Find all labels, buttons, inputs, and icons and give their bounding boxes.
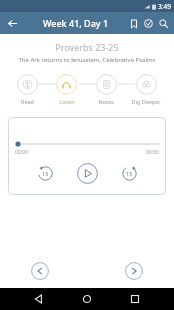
staticText: Dig Deeper	[131, 98, 161, 105]
staticText: 15	[126, 170, 133, 177]
button[interactable]: Seek bar	[15, 141, 159, 147]
staticText: 15	[42, 170, 49, 177]
button[interactable]: Play	[76, 162, 98, 184]
button[interactable]: Mark complete	[141, 16, 156, 31]
button[interactable]: Home	[78, 290, 96, 308]
button[interactable]: Listen	[56, 74, 77, 95]
staticText: Week 41, Day 1	[43, 17, 109, 29]
staticText: Proverbs 23-25	[0, 41, 174, 53]
button[interactable]: Forward 15 seconds	[120, 164, 138, 182]
button[interactable]: Dig Deeper	[136, 74, 157, 95]
button[interactable]: Back	[30, 290, 48, 308]
staticText: 3:49	[158, 2, 171, 11]
button[interactable]: Recents	[126, 290, 144, 308]
staticText: Read	[21, 98, 34, 105]
button[interactable]: Previous	[30, 261, 50, 281]
staticText: The Ark returns to Jerusalem, Celebrativ…	[0, 56, 174, 64]
button[interactable]: Rewind 15 seconds	[36, 164, 54, 182]
button[interactable]: Read	[17, 74, 38, 95]
staticText: 00:00	[15, 149, 28, 156]
button[interactable]: Next	[124, 261, 144, 281]
button[interactable]: Back	[4, 15, 20, 31]
staticText: Notes	[98, 98, 114, 105]
button[interactable]: Notes	[96, 74, 117, 95]
button[interactable]: Search	[156, 16, 171, 31]
staticText: Listen	[59, 98, 75, 105]
staticText: 00:00	[146, 149, 159, 156]
button[interactable]: Bookmark	[126, 16, 141, 31]
